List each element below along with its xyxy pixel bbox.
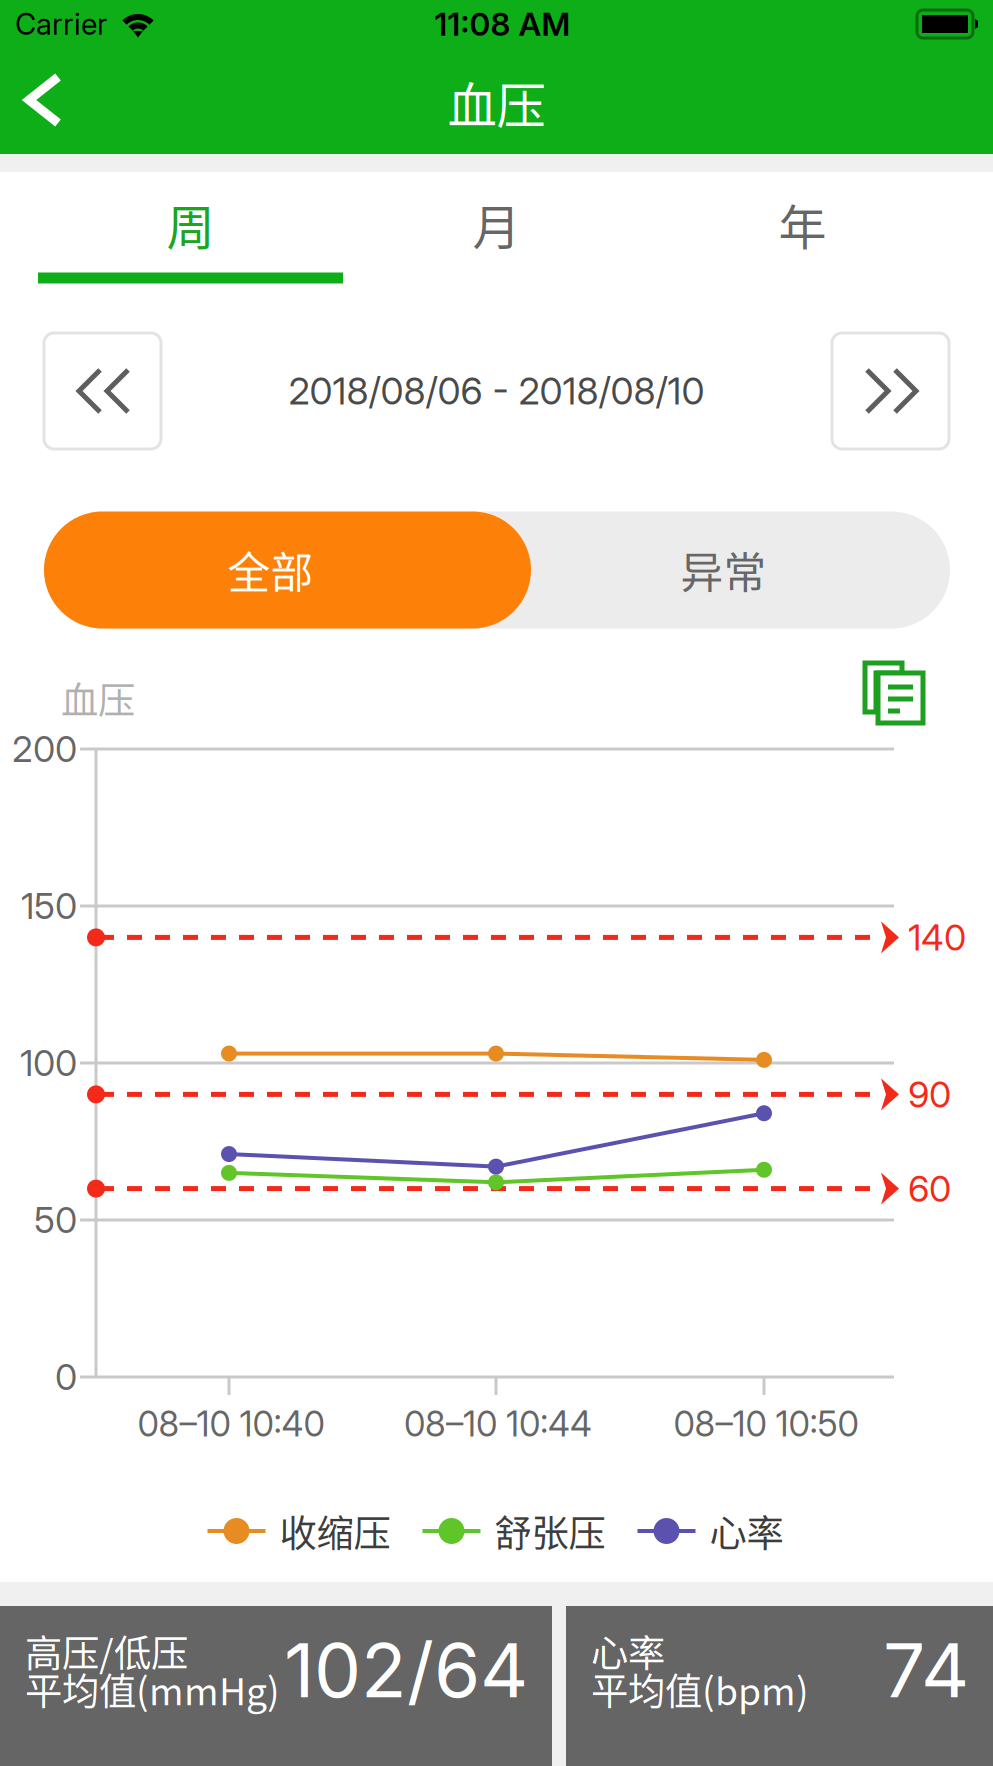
- staticText: 50: [34, 1198, 77, 1242]
- staticText: 年: [778, 189, 826, 259]
- button[interactable]: 全部: [44, 511, 531, 628]
- staticText: 90: [908, 1073, 951, 1116]
- button[interactable]: Previous period: [44, 333, 161, 449]
- staticText: 舒张压: [494, 1504, 605, 1558]
- staticText: 异常: [680, 539, 766, 601]
- staticText: 月: [472, 189, 520, 259]
- staticText: Carrier: [15, 6, 107, 42]
- button[interactable]: Next period: [832, 333, 949, 449]
- staticText: 收缩压: [279, 1504, 390, 1558]
- staticText: 08–10 10:50: [673, 1403, 858, 1445]
- button[interactable]: 异常: [514, 511, 933, 628]
- staticText: 血压: [447, 66, 545, 138]
- staticText: 高压/低压: [25, 1624, 188, 1678]
- button[interactable]: Records: [848, 646, 940, 740]
- staticText: 200: [12, 727, 77, 771]
- button[interactable]: 年: [649, 171, 955, 277]
- staticText: 100: [20, 1041, 77, 1085]
- staticText: 全部: [227, 539, 313, 601]
- staticText: 102/64: [284, 1625, 528, 1715]
- staticText: 平均值(bpm): [591, 1662, 809, 1716]
- staticText: 74: [883, 1625, 969, 1715]
- button[interactable]: 周: [37, 171, 343, 277]
- staticText: 08–10 10:40: [137, 1403, 324, 1445]
- staticText: 周: [166, 189, 214, 259]
- staticText: 心率: [709, 1504, 783, 1558]
- staticText: 11:08 AM: [434, 5, 570, 43]
- staticText: 08–10 10:44: [404, 1403, 592, 1445]
- staticText: 60: [908, 1167, 951, 1210]
- staticText: 平均值(mmHg): [25, 1662, 280, 1716]
- staticText: 血压: [61, 671, 135, 725]
- button[interactable]: 月: [343, 171, 649, 277]
- button[interactable]: Back: [0, 56, 92, 144]
- staticText: 2018/08/06 - 2018/08/10: [288, 368, 704, 414]
- staticText: 150: [21, 884, 77, 928]
- staticText: 140: [908, 916, 966, 959]
- staticText: 心率: [591, 1624, 665, 1678]
- staticText: 0: [55, 1355, 77, 1399]
